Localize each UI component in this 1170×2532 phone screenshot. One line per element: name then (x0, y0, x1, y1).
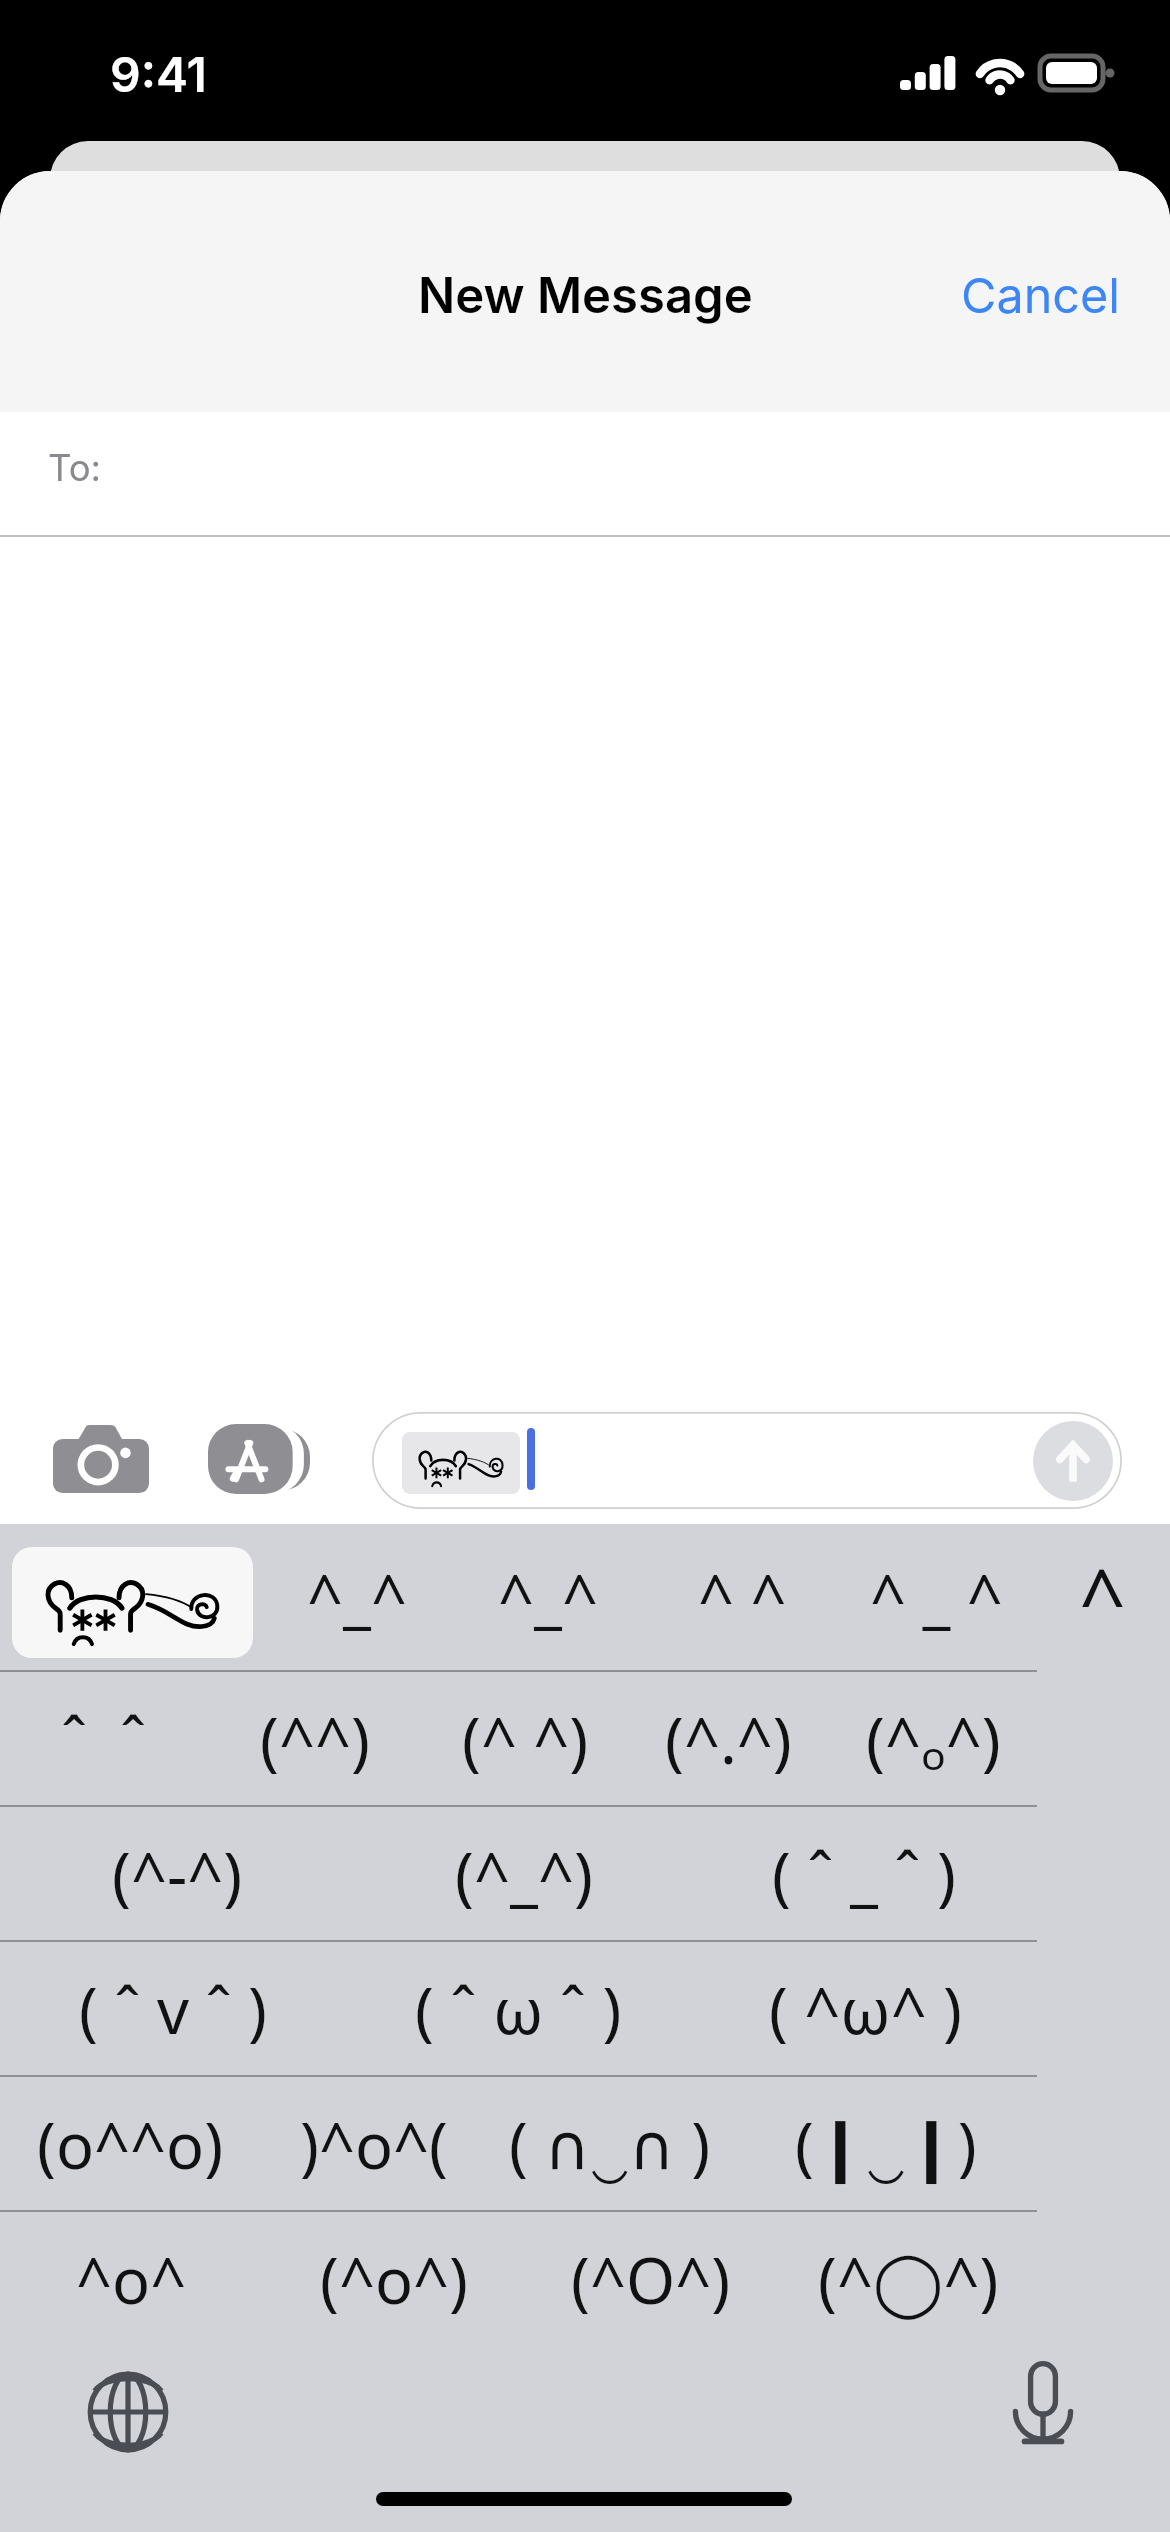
button[interactable]: (^ₒ^) (823, 1672, 1043, 1807)
button[interactable]: (^.^) (618, 1672, 838, 1807)
button[interactable]: ( ∩‿∩ ) (500, 2077, 720, 2212)
staticText: (o^^o) (37, 2102, 224, 2188)
button[interactable]: ( ˆ ω ˆ ) (408, 1942, 628, 2077)
button[interactable]: (❙‿❙) (776, 2077, 996, 2212)
button[interactable]: ^ _ ^ (841, 1532, 1031, 1662)
staticText: ( ˆ _ ˆ ) (772, 1832, 956, 1918)
button[interactable]: Switch keyboard (83, 2367, 173, 2457)
button[interactable]: Camera (53, 1425, 149, 1493)
button[interactable]: ^o^ (21, 2212, 241, 2347)
button[interactable]: ^_^ (262, 1532, 452, 1662)
staticText: ( ^ω^ ) (769, 1967, 962, 2053)
button[interactable]: Dictate (997, 2360, 1089, 2452)
button[interactable]: (^o^) (284, 2212, 504, 2347)
staticText: (^_^) (455, 1832, 593, 1918)
staticText: ^_^ (307, 1554, 408, 1640)
button[interactable]: (^O^) (541, 2212, 761, 2347)
staticText: 9:41 (110, 45, 207, 103)
button[interactable]: To: (0, 412, 1170, 537)
staticText: (❙‿❙) (795, 2102, 977, 2188)
button[interactable]: ( ˆ _ ˆ ) (754, 1807, 974, 1942)
button[interactable]: ( ^ω^ ) (755, 1942, 975, 2077)
button[interactable]: )^o^( (264, 2077, 484, 2212)
staticText: ˆ ˆ (61, 1697, 147, 1783)
staticText: ( ∩‿∩ ) (509, 2102, 711, 2188)
staticText: ^o^ (76, 2237, 187, 2323)
staticText: ^ (1079, 1541, 1126, 1653)
staticText: New Message (418, 266, 753, 325)
staticText: (^◯^) (818, 2237, 999, 2323)
button[interactable]: ( ˆ v ˆ ) (63, 1942, 283, 2077)
button[interactable]: Bear kaomoji (12, 1547, 253, 1658)
button[interactable]: (^^) (205, 1672, 425, 1807)
button[interactable]: ^ ^ (647, 1532, 837, 1662)
staticText: ( ˆ v ˆ ) (79, 1967, 267, 2053)
button[interactable]: Send (1033, 1421, 1113, 1501)
staticText: )^o^( (300, 2102, 448, 2188)
staticText: (^o^) (320, 2237, 468, 2323)
staticText: (^.^) (665, 1697, 792, 1783)
staticText: (^O^) (571, 2237, 731, 2323)
staticText: (^-^) (112, 1832, 243, 1918)
button[interactable]: (^◯^) (798, 2212, 1018, 2347)
button[interactable]: (^_^) (414, 1807, 634, 1942)
button[interactable]: ˆ ˆ (0, 1672, 214, 1807)
staticText: Cancel (961, 266, 1121, 325)
staticText: ^_^ (498, 1554, 599, 1640)
button[interactable]: ^ (1007, 1532, 1170, 1662)
button[interactable]: (o^^o) (20, 2077, 240, 2212)
staticText: (^ ^) (462, 1697, 589, 1783)
button[interactable]: iMessage text field (372, 1412, 1122, 1509)
staticText: (^ₒ^) (866, 1697, 1001, 1783)
staticText: ( ˆ ω ˆ ) (415, 1967, 622, 2053)
button[interactable]: Cancel (925, 244, 1170, 347)
staticText: ^ _ ^ (870, 1554, 1003, 1640)
staticText: ^ ^ (698, 1554, 787, 1640)
staticText: (^^) (260, 1697, 370, 1783)
button[interactable]: (^-^) (67, 1807, 287, 1942)
button[interactable]: Apps (208, 1424, 310, 1494)
button[interactable]: (^ ^) (415, 1672, 635, 1807)
button[interactable]: ^_^ (453, 1532, 643, 1662)
staticText: To: (48, 446, 102, 490)
